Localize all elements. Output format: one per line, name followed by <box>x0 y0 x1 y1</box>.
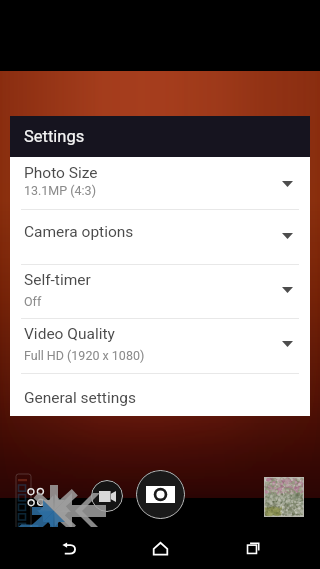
button[interactable]: General settings <box>10 374 310 416</box>
button[interactable]: Settings <box>10 116 310 157</box>
staticText: General settings <box>24 389 136 407</box>
button[interactable]: Gallery <box>266 479 302 515</box>
button[interactable]: Record video <box>91 480 123 512</box>
staticText: Full HD (1920 x 1080) <box>24 348 145 363</box>
button[interactable]: Camera modes <box>25 486 47 508</box>
button[interactable]: Photo Size <box>10 157 310 209</box>
staticText: Self-timer <box>24 271 91 289</box>
button[interactable]: Recent apps <box>228 527 276 569</box>
button[interactable]: Home <box>136 527 184 569</box>
staticText: 13.1MP (4:3) <box>24 183 96 198</box>
staticText: Camera options <box>24 223 134 241</box>
staticText: Off <box>24 294 42 309</box>
staticText: Photo Size <box>24 164 98 182</box>
staticText: Settings <box>24 127 85 146</box>
button[interactable]: Back <box>44 527 92 569</box>
button[interactable]: Self-timer <box>10 265 310 318</box>
button[interactable]: Video Quality <box>10 319 310 373</box>
button[interactable]: Take photo <box>136 470 185 519</box>
button[interactable]: Camera options <box>10 210 310 264</box>
staticText: Video Quality <box>24 325 115 343</box>
